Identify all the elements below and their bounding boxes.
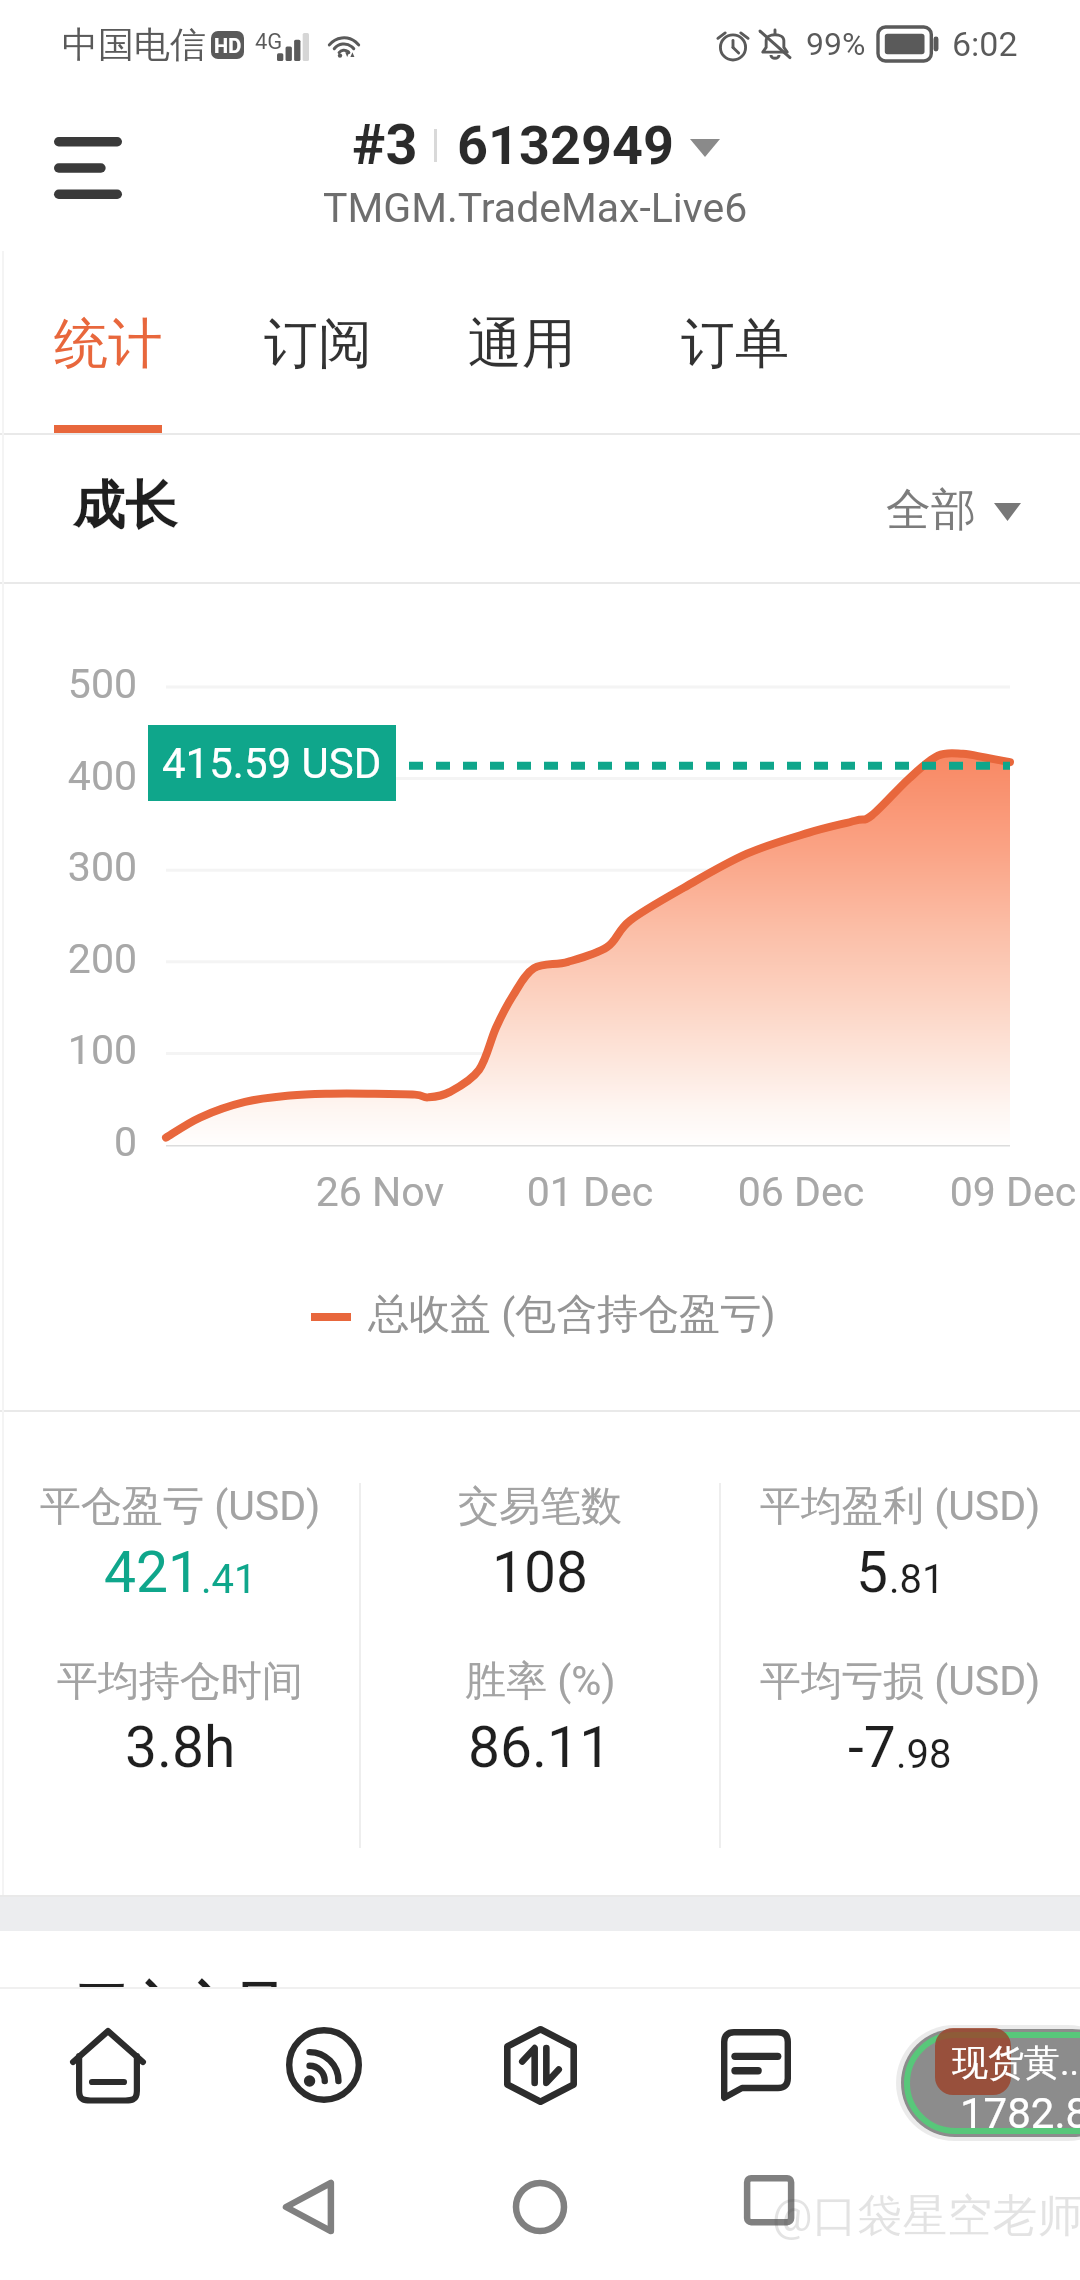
staticText: 平均持仓时间 <box>57 1656 303 1708</box>
staticText: 99% <box>806 25 866 63</box>
staticText: 平均亏损 (USD) <box>760 1656 1041 1708</box>
staticText: 86.11 <box>468 1714 612 1781</box>
staticText: 胜率 (%) <box>465 1656 616 1708</box>
staticText: .41 <box>201 1556 257 1603</box>
staticText: 平仓盈亏 (USD) <box>40 1481 321 1533</box>
button[interactable]: Price ticker <box>896 2025 1080 2141</box>
button[interactable]: Recents <box>726 2171 814 2243</box>
staticText: 总收益 (包含持仓盈亏) <box>368 1289 776 1341</box>
staticText: 3.8h <box>125 1714 236 1781</box>
staticText: TMGM.TradeMax-Live6 <box>323 184 748 232</box>
staticText: 300 <box>56 843 137 891</box>
staticText: 09 Dec <box>913 1168 1080 1216</box>
button[interactable]: #3 <box>323 112 748 232</box>
button[interactable]: Home <box>0 1991 216 2139</box>
button[interactable]: Back <box>264 2171 352 2243</box>
staticText: 平均盈利 (USD) <box>760 1481 1041 1533</box>
staticText: 现货黄... <box>952 2040 1080 2085</box>
staticText: 三方交易 <box>75 1975 283 2031</box>
button[interactable]: 统计 <box>18 251 198 433</box>
staticText: #3 <box>352 112 418 178</box>
staticText: 1782.84 <box>960 2089 1080 2138</box>
staticText: 415.59 USD <box>162 739 382 788</box>
staticText: 订阅 <box>264 310 372 378</box>
staticText: .81 <box>889 1556 945 1603</box>
staticText: 0 <box>56 1118 137 1166</box>
staticText: 400 <box>56 752 137 800</box>
button[interactable]: Quotes <box>216 1991 432 2139</box>
staticText: 全部 <box>886 482 976 539</box>
staticText: @口袋星空老师 <box>772 2188 1080 2245</box>
staticText: 26 Nov <box>280 1168 480 1216</box>
button[interactable]: 通用 <box>432 251 612 433</box>
button[interactable]: 订单 <box>645 251 825 433</box>
staticText: 5 <box>856 1539 889 1606</box>
staticText: 6:02 <box>952 24 1018 64</box>
staticText: 100 <box>56 1026 137 1074</box>
button[interactable]: 全部 <box>886 482 1021 539</box>
staticText: 6132949 <box>457 114 674 177</box>
staticText: 交易笔数 <box>458 1481 622 1533</box>
staticText: 01 Dec <box>490 1168 690 1216</box>
staticText: 06 Dec <box>701 1168 901 1216</box>
button[interactable]: Menu <box>16 104 160 232</box>
staticText: 中国电信 <box>62 22 206 67</box>
staticText: HD <box>214 34 242 57</box>
staticText: 订单 <box>681 310 789 378</box>
staticText: -7 <box>848 1714 896 1781</box>
staticText: 4G <box>255 29 283 55</box>
staticText: 统计 <box>54 310 162 378</box>
button[interactable]: 订阅 <box>228 251 408 433</box>
staticText: 500 <box>56 660 137 708</box>
button[interactable]: Trade <box>432 1991 648 2139</box>
staticText: 421 <box>104 1539 201 1606</box>
button[interactable]: Home <box>496 2171 584 2243</box>
button[interactable]: Chat <box>648 1991 864 2139</box>
button[interactable]: More <box>864 1991 1080 2139</box>
staticText: 200 <box>56 935 137 983</box>
staticText: 108 <box>492 1539 589 1606</box>
staticText: 通用 <box>468 310 576 378</box>
staticText: 成长 <box>73 473 177 539</box>
staticText: .98 <box>896 1731 952 1778</box>
